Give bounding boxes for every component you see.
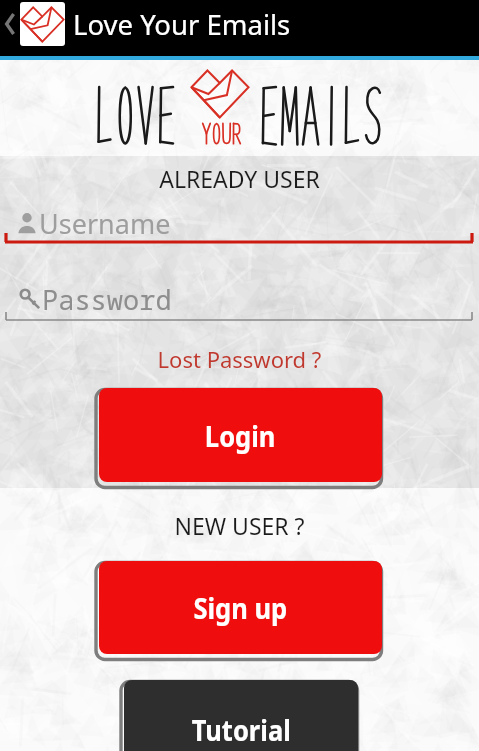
button[interactable]: Sign up bbox=[94, 558, 385, 661]
staticText: Love Your Emails bbox=[73, 6, 291, 43]
staticText: Lost Password ? bbox=[0, 344, 479, 374]
staticText: Password bbox=[42, 281, 172, 318]
staticText: Username bbox=[39, 205, 171, 242]
staticText: ALREADY USER bbox=[0, 163, 479, 194]
staticText: Tutorial bbox=[192, 710, 291, 749]
staticText: Sign up bbox=[193, 588, 288, 627]
button[interactable]: Lost Password ? bbox=[0, 344, 479, 374]
button[interactable]: Navigate up bbox=[0, 0, 70, 56]
button[interactable]: Username bbox=[0, 200, 479, 250]
button[interactable]: Tutorial bbox=[119, 677, 361, 751]
staticText: Login bbox=[205, 416, 276, 455]
button[interactable]: Password bbox=[0, 276, 479, 326]
button[interactable]: Login bbox=[94, 385, 385, 489]
staticText: NEW USER ? bbox=[0, 510, 479, 541]
